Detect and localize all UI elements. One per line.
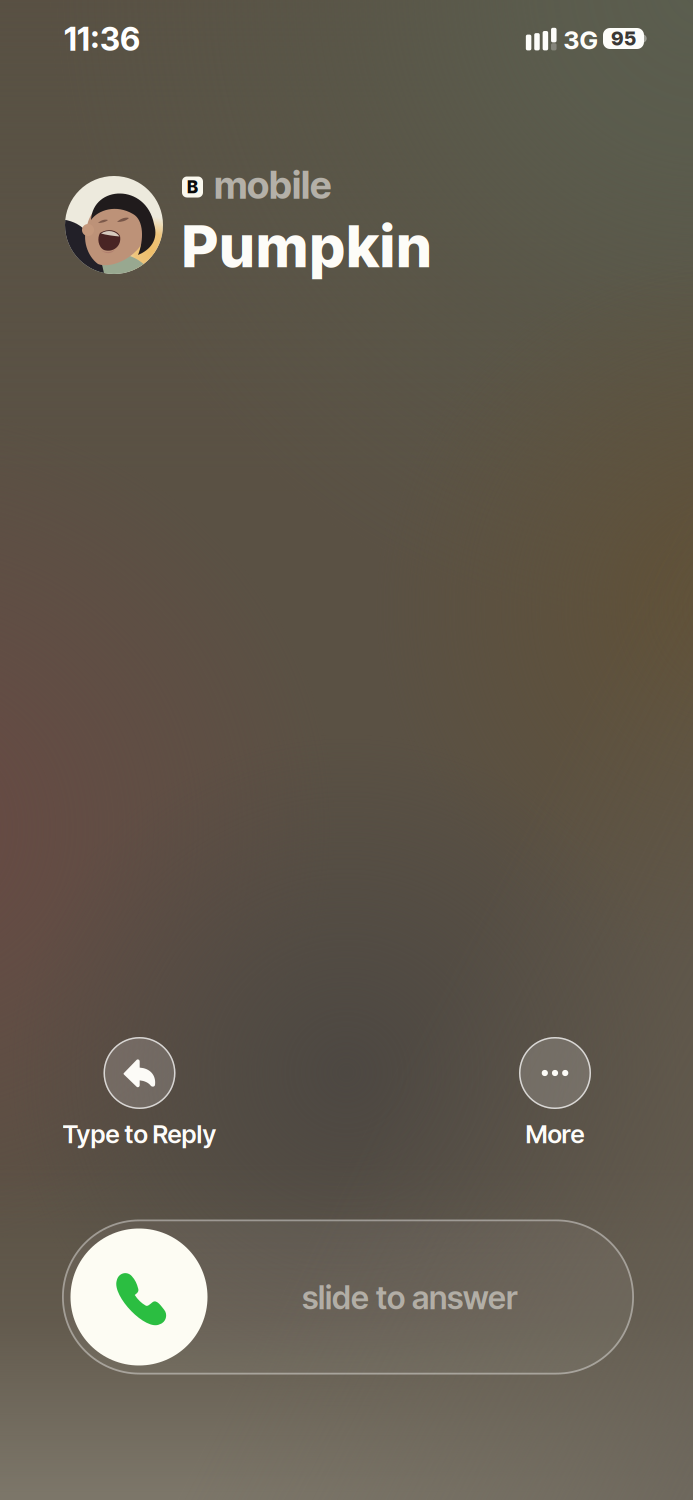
- staticText: Type to Reply: [62, 1119, 216, 1149]
- staticText: 3G: [563, 25, 597, 55]
- staticText: mobile: [214, 162, 331, 208]
- staticText: 95: [611, 27, 636, 50]
- staticText: Pumpkin: [182, 212, 432, 281]
- button[interactable]: More: [445, 1037, 665, 1155]
- button[interactable]: Type to Reply: [29, 1037, 249, 1155]
- button[interactable]: Slide to answer: [62, 1219, 634, 1374]
- staticText: B: [187, 176, 198, 197]
- staticText: 11:36: [64, 20, 140, 58]
- staticText: slide to answer: [302, 1278, 518, 1317]
- staticText: More: [525, 1119, 584, 1149]
